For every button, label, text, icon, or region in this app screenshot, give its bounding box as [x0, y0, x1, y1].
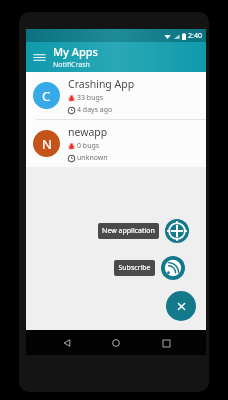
button[interactable]: Recent apps — [157, 334, 175, 352]
staticText: My Apps — [53, 44, 98, 59]
staticText: NotifiCrash — [53, 60, 90, 70]
button[interactable]: Back — [58, 334, 76, 352]
button[interactable]: New application — [98, 223, 159, 239]
staticText: Subscribe — [118, 263, 151, 273]
staticText: New application — [102, 226, 155, 236]
staticText: C — [42, 87, 51, 105]
staticText: unknown — [77, 153, 108, 163]
button[interactable]: Subscribe — [161, 256, 185, 280]
button[interactable]: Home — [107, 334, 125, 352]
staticText: 2:40 — [188, 31, 202, 41]
button[interactable]: New application — [165, 219, 189, 243]
staticText: N — [42, 135, 52, 153]
staticText: newapp — [68, 125, 108, 139]
button[interactable]: Open navigation drawer — [29, 47, 49, 67]
staticText: 33 bugs — [77, 93, 104, 103]
button[interactable]: Close menu — [166, 291, 196, 321]
staticText: Crashing App — [68, 77, 135, 91]
staticText: 4 days ago — [77, 105, 113, 115]
button[interactable]: Subscribe — [114, 260, 155, 276]
button[interactable]: N — [26, 120, 206, 167]
button[interactable]: C — [26, 72, 206, 119]
staticText: 0 bugs — [77, 141, 100, 151]
